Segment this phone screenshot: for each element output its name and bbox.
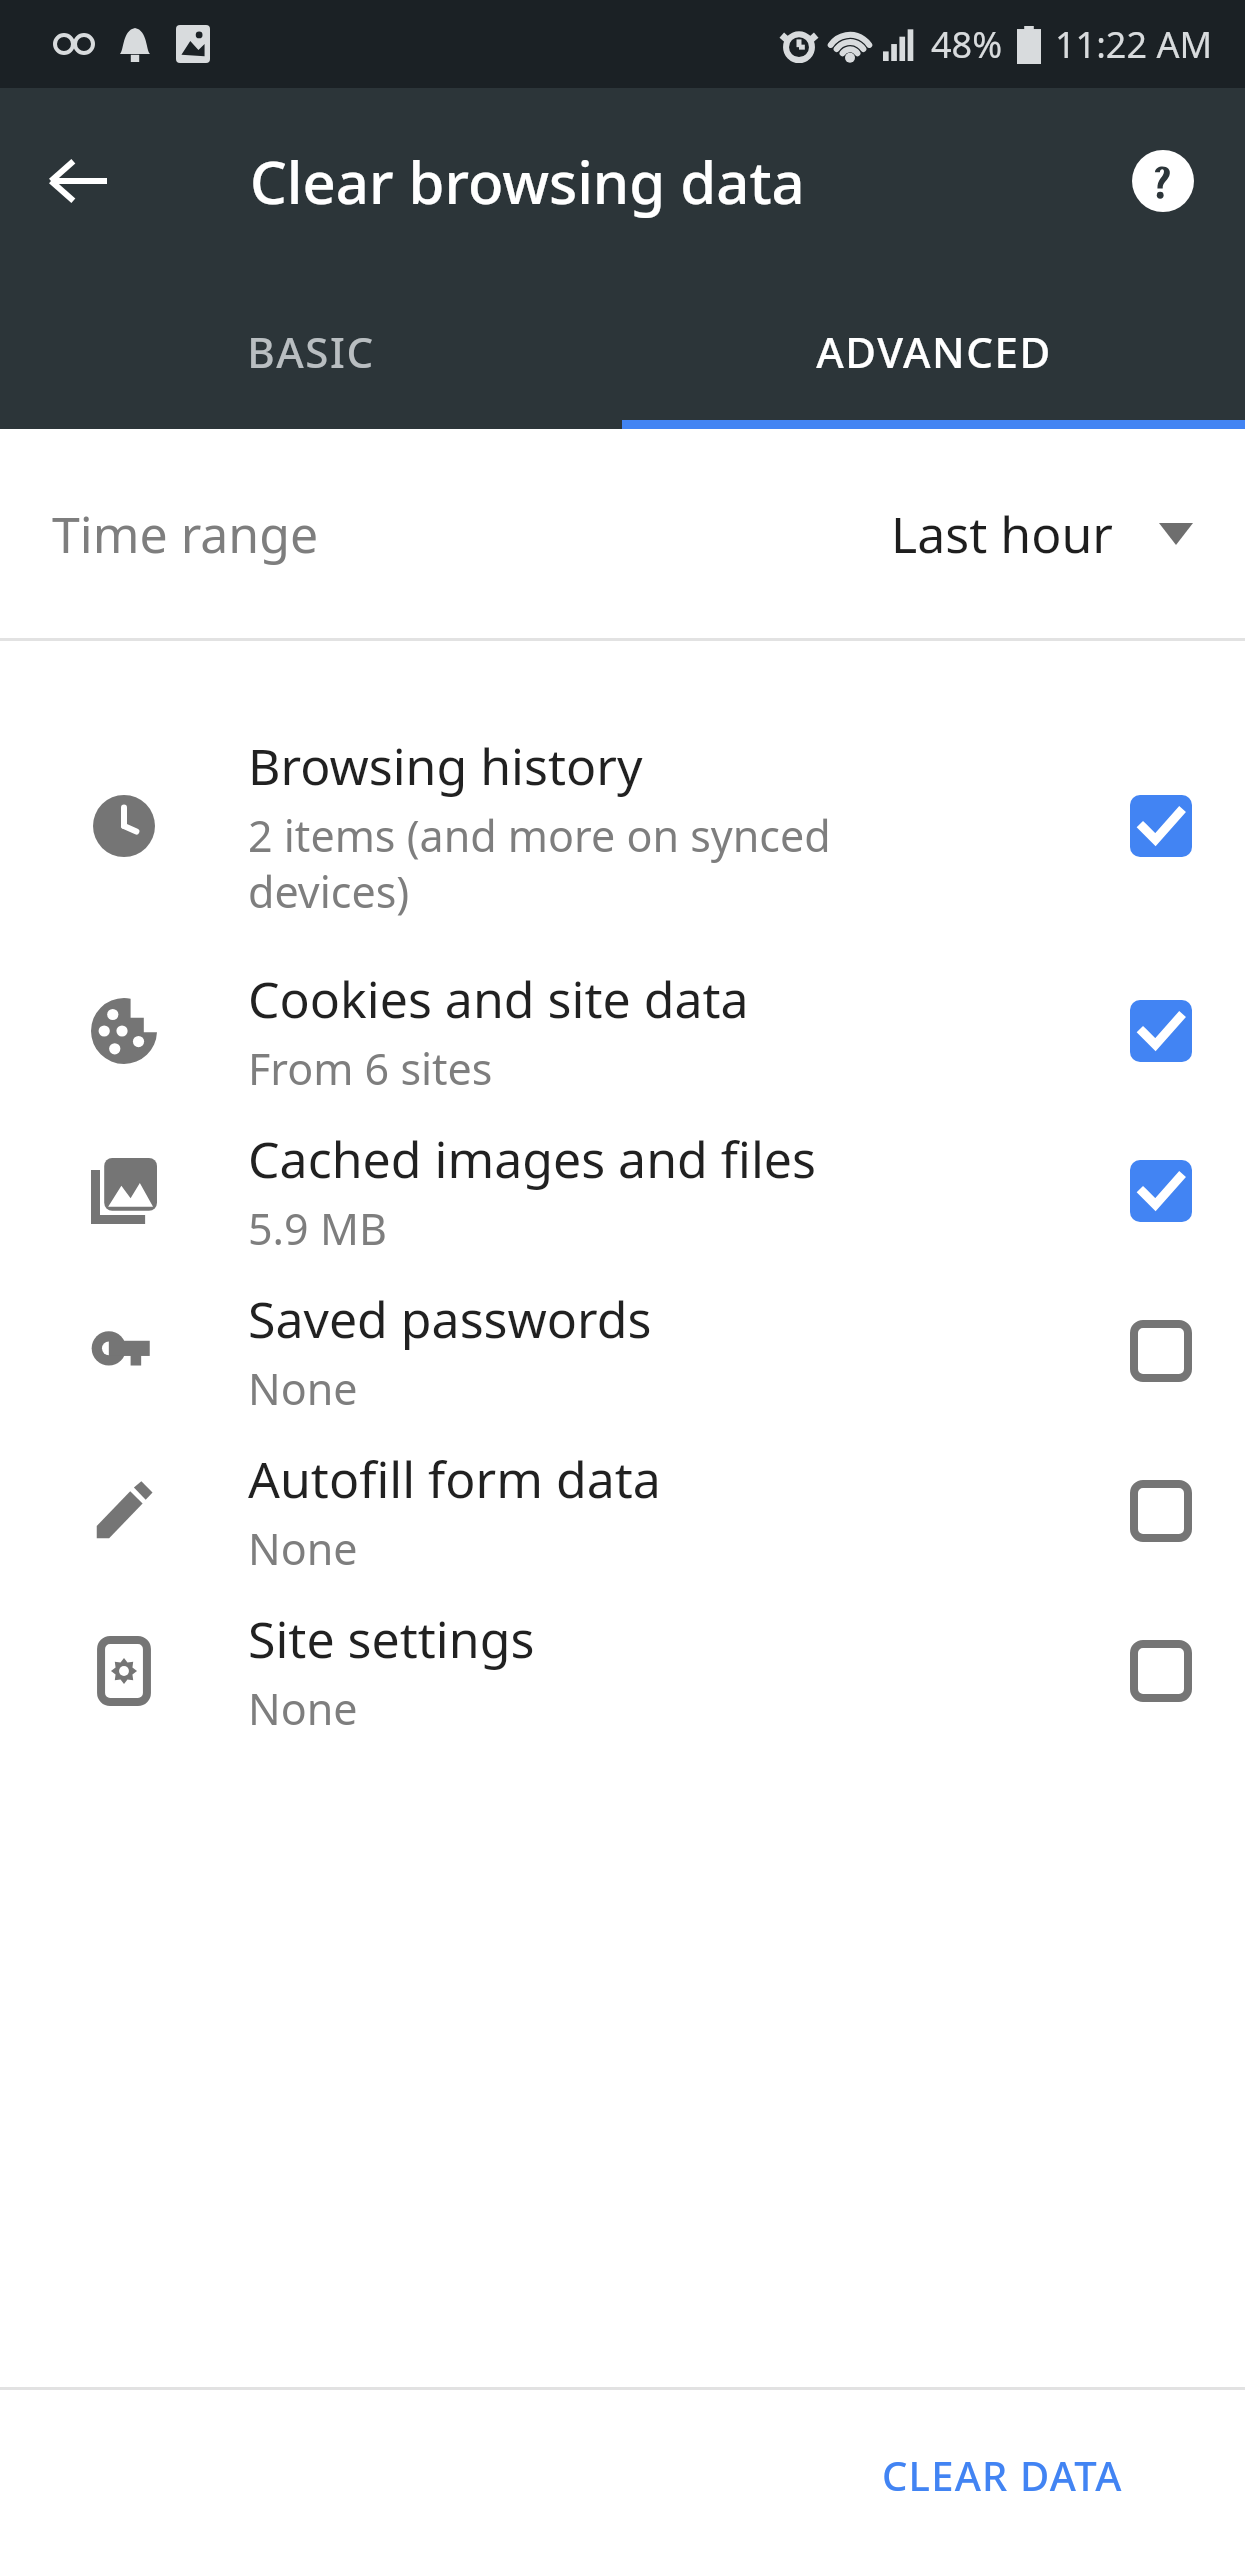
staticText: From 6 sites bbox=[248, 1039, 493, 1098]
button[interactable]: Help bbox=[1115, 133, 1211, 229]
staticText: Time range bbox=[52, 500, 319, 568]
button[interactable]: Unchecked bbox=[1077, 1271, 1245, 1431]
button[interactable]: Time range bbox=[0, 429, 1245, 638]
staticText: ADVANCED bbox=[816, 323, 1052, 380]
button[interactable]: Back bbox=[30, 133, 126, 229]
staticText: CLEAR DATA bbox=[882, 2448, 1123, 2502]
button[interactable]: Unchecked bbox=[1077, 1431, 1245, 1591]
staticText: None bbox=[248, 1679, 358, 1738]
button[interactable]: Site settings bbox=[0, 1591, 1245, 1751]
button[interactable]: Saved passwords bbox=[0, 1271, 1245, 1431]
staticText: Browsing history bbox=[248, 732, 643, 800]
staticText: Last hour bbox=[891, 500, 1113, 568]
button[interactable]: Autofill form data bbox=[0, 1431, 1245, 1591]
button[interactable]: BASIC bbox=[0, 274, 622, 429]
staticText: Cookies and site data bbox=[248, 965, 749, 1033]
button[interactable]: Cookies and site data bbox=[0, 951, 1245, 1111]
staticText: Saved passwords bbox=[248, 1285, 652, 1353]
staticText: 11:22 AM bbox=[1055, 20, 1213, 69]
staticText: 2 items (and more on synced devices) bbox=[248, 806, 831, 921]
button[interactable]: Checked bbox=[1077, 951, 1245, 1111]
staticText: None bbox=[248, 1519, 358, 1578]
button[interactable]: Browsing history bbox=[0, 701, 1245, 951]
staticText: None bbox=[248, 1359, 358, 1418]
button[interactable]: Checked bbox=[1077, 701, 1245, 951]
button[interactable]: ADVANCED bbox=[622, 274, 1245, 429]
button[interactable]: Unchecked bbox=[1077, 1591, 1245, 1751]
staticText: Cached images and files bbox=[248, 1125, 816, 1193]
button[interactable]: Cached images and files bbox=[0, 1111, 1245, 1271]
button[interactable]: CLEAR DATA bbox=[860, 2422, 1145, 2528]
button[interactable]: Checked bbox=[1077, 1111, 1245, 1271]
staticText: BASIC bbox=[247, 323, 375, 380]
staticText: Clear browsing data bbox=[250, 142, 805, 221]
staticText: Autofill form data bbox=[248, 1445, 661, 1513]
staticText: 5.9 MB bbox=[248, 1199, 387, 1258]
staticText: Site settings bbox=[248, 1605, 535, 1673]
staticText: 48% bbox=[931, 20, 1003, 69]
